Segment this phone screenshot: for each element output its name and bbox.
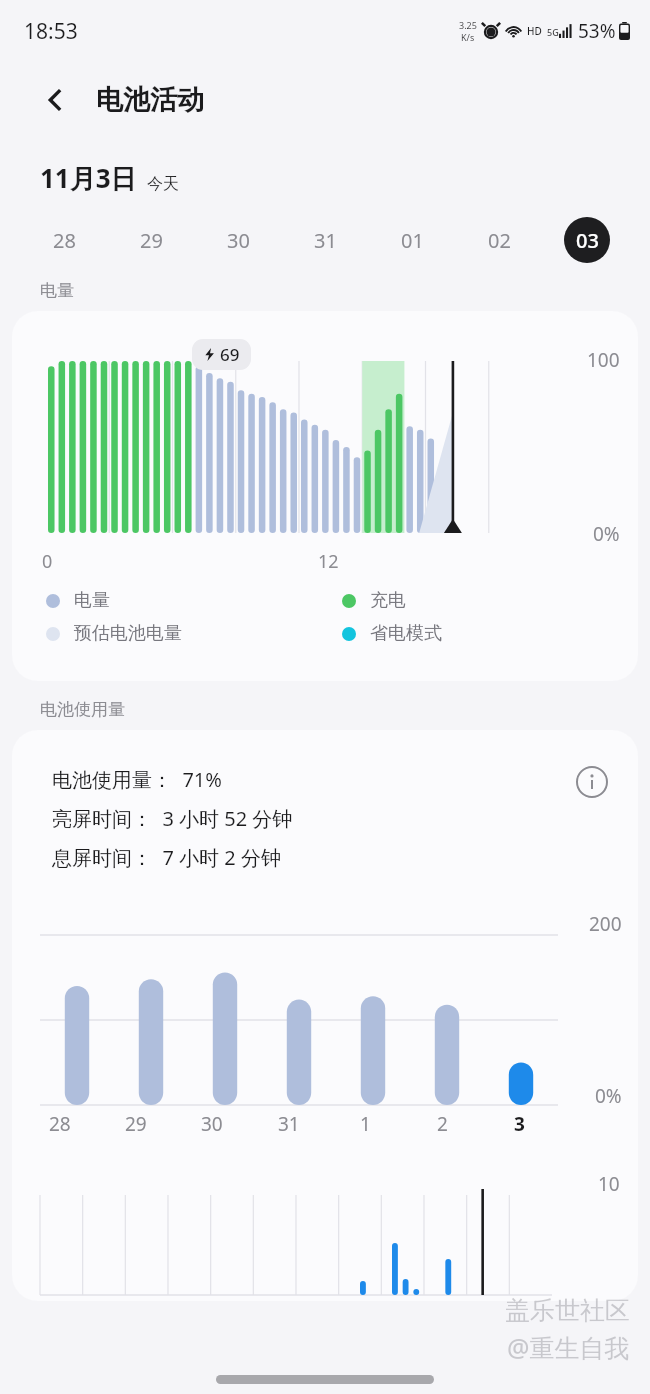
staticText: 0 [42, 549, 53, 574]
button[interactable]: Back [34, 78, 78, 122]
button[interactable]: 31 [282, 214, 369, 266]
staticText: 1 [360, 1111, 371, 1137]
staticText: 02 [488, 227, 511, 254]
button[interactable]: 03 [543, 214, 630, 266]
staticText: 03 [576, 227, 599, 254]
staticText: 28 [49, 1111, 71, 1137]
staticText: 5G [547, 26, 559, 38]
staticText: 电量 [40, 280, 74, 301]
button[interactable]: 28 [20, 214, 108, 266]
staticText: 3 [514, 1111, 525, 1137]
staticText: 18:53 [24, 17, 78, 46]
button[interactable]: 02 [456, 214, 543, 266]
staticText: @重生自我 [507, 1330, 630, 1364]
staticText: 亮屏时间： 3 小时 52 分钟 [52, 805, 293, 832]
staticText: 充电 [370, 589, 406, 612]
staticText: 28 [53, 227, 76, 254]
staticText: 200 [589, 911, 622, 937]
staticText: 电池使用量： 71% [52, 766, 222, 793]
staticText: 省电模式 [370, 622, 442, 645]
staticText: 盖乐世社区 [505, 1295, 630, 1326]
staticText: 29 [140, 227, 163, 254]
staticText: HD [527, 24, 542, 38]
button[interactable]: 30 [195, 214, 282, 266]
button[interactable]: 29 [108, 214, 195, 266]
staticText: 53% [578, 18, 616, 44]
staticText: 30 [227, 227, 250, 254]
staticText: 30 [201, 1111, 223, 1137]
staticText: 11月3日 [40, 160, 137, 196]
staticText: 31 [314, 227, 337, 254]
staticText: 31 [278, 1111, 300, 1137]
button[interactable]: 100 [12, 311, 638, 681]
staticText: 10 [598, 1171, 620, 1197]
staticText: 100 [587, 347, 620, 373]
staticText: 29 [125, 1111, 147, 1137]
staticText: 01 [401, 227, 424, 254]
staticText: 2 [437, 1111, 448, 1137]
button[interactable]: Info [568, 758, 616, 806]
staticText: 息屏时间： 7 小时 2 分钟 [52, 844, 281, 871]
button[interactable]: 01 [369, 214, 456, 266]
staticText: 0% [595, 1083, 622, 1109]
staticText: 电量 [74, 589, 110, 612]
staticText: K/s [461, 31, 475, 43]
staticText: 今天 [147, 174, 179, 194]
staticText: 预估电池电量 [74, 622, 182, 645]
staticText: 电池活动 [96, 83, 204, 117]
staticText: 电池使用量 [40, 699, 125, 720]
staticText: 3.25 [459, 19, 477, 31]
staticText: 69 [220, 343, 240, 366]
staticText: 0% [593, 521, 620, 547]
staticText: 12 [318, 549, 339, 574]
